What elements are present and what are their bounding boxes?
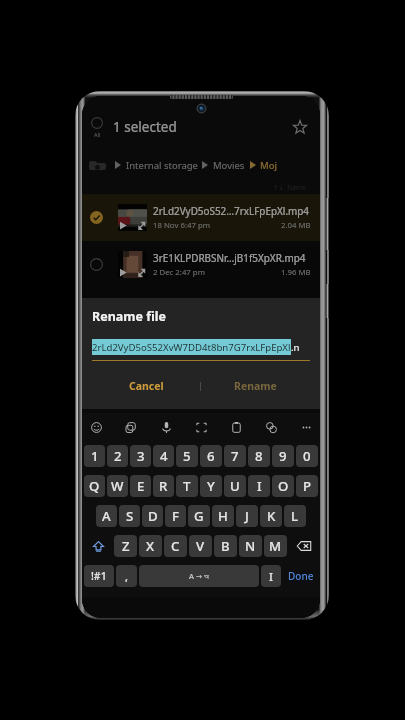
button[interactable] (82, 288, 320, 335)
staticText: T (183, 477, 191, 495)
button[interactable]: Shift (84, 535, 112, 557)
staticText: Q (89, 477, 100, 495)
button[interactable]: Z (114, 535, 137, 557)
staticText: 6 (207, 447, 215, 465)
button[interactable]: M (264, 535, 287, 557)
button[interactable]: U (224, 475, 246, 497)
button[interactable]: 0 (296, 445, 318, 467)
staticText: B (221, 537, 230, 555)
button[interactable]: A (96, 505, 117, 527)
button[interactable]: !#1 (84, 565, 114, 587)
staticText: 2 Dec 2:47 pm (153, 267, 205, 278)
button[interactable]: Keyboard tool (157, 418, 175, 436)
button[interactable]: Cancel (92, 375, 200, 397)
button[interactable]: Keyboard tool (122, 418, 140, 436)
button[interactable]: 2 (107, 445, 128, 467)
button[interactable]: 3rE1KLPDRBSNr…jB1f5XpXR.mp4 (82, 241, 320, 288)
staticText: I (269, 569, 273, 584)
button[interactable]: S (119, 505, 140, 527)
staticText: ↑↓ Name (273, 183, 306, 192)
button[interactable]: P (296, 475, 318, 497)
button[interactable]: 9 (272, 445, 294, 467)
staticText: 2 (114, 447, 122, 465)
staticText: All (94, 131, 101, 138)
button[interactable]: 7 (224, 445, 246, 467)
staticText: 3rE1KLPDRBSNr…jB1f5XpXR.mp4 (153, 251, 306, 264)
staticText: O (278, 477, 289, 495)
staticText: K (267, 507, 276, 525)
staticText: 9 (279, 447, 287, 465)
button[interactable]: A → অ (139, 565, 259, 587)
staticText: 1.96 MB (281, 267, 311, 278)
button[interactable]: J (236, 505, 258, 527)
staticText: 1 (91, 447, 99, 465)
staticText: A (102, 507, 111, 525)
button[interactable]: H (212, 505, 234, 527)
button[interactable]: 2rLd2VyD5oS52…7rxLFpEpXl.mp4 (82, 194, 320, 241)
button[interactable]: R (153, 475, 174, 497)
button[interactable]: O (272, 475, 294, 497)
button[interactable]: Y (200, 475, 222, 497)
staticText: Y (207, 477, 215, 495)
staticText: E (137, 477, 145, 495)
staticText: 7 (231, 447, 239, 465)
staticText: 4 (160, 447, 168, 465)
button[interactable]: 6 (200, 445, 222, 467)
button[interactable]: Rename (201, 375, 310, 397)
staticText: L (291, 507, 299, 525)
button[interactable]: Add to favourites (290, 117, 310, 137)
button[interactable]: T (176, 475, 198, 497)
staticText: 18 Nov 6:47 pm (153, 220, 211, 231)
staticText: 8 (255, 447, 263, 465)
staticText: 2rLd2VyD5oS52XvW7DD4t8bn7G7rxLFpEpXl (92, 341, 291, 354)
button[interactable]: I (261, 565, 281, 587)
button[interactable]: D (142, 505, 163, 527)
button[interactable]: G (188, 505, 210, 527)
staticText: V (196, 537, 205, 555)
button[interactable]: 1 (84, 445, 105, 467)
staticText: S (126, 507, 134, 525)
button[interactable]: V (189, 535, 212, 557)
button[interactable]: 8 (248, 445, 270, 467)
button[interactable]: E (130, 475, 151, 497)
button[interactable]: F (165, 505, 186, 527)
button[interactable]: Keyboard tool (262, 418, 280, 436)
staticText: Rename (234, 379, 277, 393)
staticText: C (171, 537, 180, 555)
button[interactable]: N (239, 535, 262, 557)
button[interactable]: Keyboard tool (297, 418, 315, 436)
staticText: U (230, 477, 240, 495)
button[interactable]: Backspace (289, 535, 318, 557)
button[interactable]: I (248, 475, 270, 497)
button[interactable]: Keyboard tool (227, 418, 245, 436)
staticText: P (303, 477, 312, 495)
staticText: Z (122, 537, 130, 555)
staticText: D (148, 507, 158, 525)
button[interactable]: Keyboard tool (87, 418, 105, 436)
staticText: .n (291, 341, 300, 354)
button[interactable]: C (164, 535, 187, 557)
button[interactable]: 3 (130, 445, 151, 467)
button[interactable]: B (214, 535, 237, 557)
button[interactable]: , (116, 565, 137, 587)
button[interactable]: W (107, 475, 128, 497)
staticText: I (257, 477, 262, 495)
button[interactable]: K (260, 505, 282, 527)
button[interactable]: L (284, 505, 306, 527)
staticText: 0 (303, 447, 311, 465)
button[interactable]: 5 (176, 445, 198, 467)
staticText: Done (288, 569, 314, 583)
button[interactable]: X (139, 535, 162, 557)
button[interactable]: 4 (153, 445, 174, 467)
staticText: R (159, 477, 168, 495)
staticText: G (194, 507, 204, 525)
staticText: Rename file (92, 308, 166, 325)
button[interactable]: Select all (84, 114, 110, 140)
button[interactable]: Done (282, 561, 319, 591)
staticText: N (245, 537, 256, 555)
staticText: Moj (260, 159, 278, 172)
button[interactable]: Keyboard tool (192, 418, 210, 436)
staticText: X (146, 537, 155, 555)
staticText: Movies (213, 159, 245, 172)
button[interactable]: Q (84, 475, 105, 497)
